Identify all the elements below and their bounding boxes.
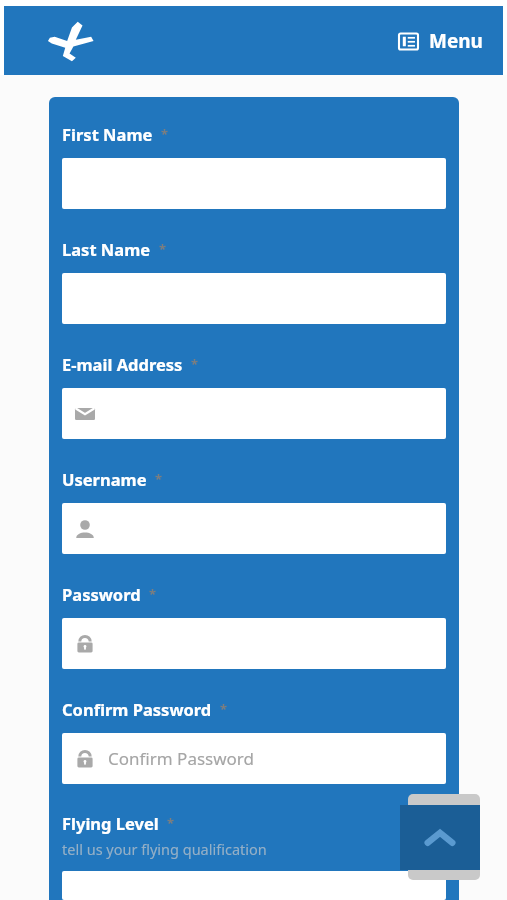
- staticText: tell us your flying qualification: [62, 839, 446, 859]
- staticText: Last Name: [62, 238, 151, 260]
- button[interactable]: Confirm Password: [62, 733, 446, 784]
- staticText: Confirm Password: [108, 747, 254, 770]
- button[interactable]: [62, 503, 446, 554]
- button[interactable]: Scroll to top: [400, 805, 480, 870]
- button[interactable]: Home: [45, 18, 97, 64]
- staticText: *: [159, 240, 167, 258]
- staticText: Password: [62, 583, 141, 605]
- staticText: E-mail Address: [62, 353, 183, 375]
- staticText: First Name: [62, 123, 153, 145]
- staticText: *: [155, 470, 163, 488]
- staticText: Menu: [429, 28, 483, 54]
- staticText: *: [149, 585, 157, 603]
- staticText: *: [191, 355, 199, 373]
- staticText: Flying Level: [62, 812, 159, 834]
- staticText: *: [161, 125, 169, 143]
- staticText: Username: [62, 468, 147, 490]
- staticText: *: [220, 700, 228, 718]
- button[interactable]: [62, 871, 446, 900]
- staticText: Confirm Password: [62, 698, 212, 720]
- button[interactable]: [62, 388, 446, 439]
- staticText: *: [167, 814, 175, 832]
- button[interactable]: Menu: [393, 20, 489, 62]
- button[interactable]: [62, 618, 446, 669]
